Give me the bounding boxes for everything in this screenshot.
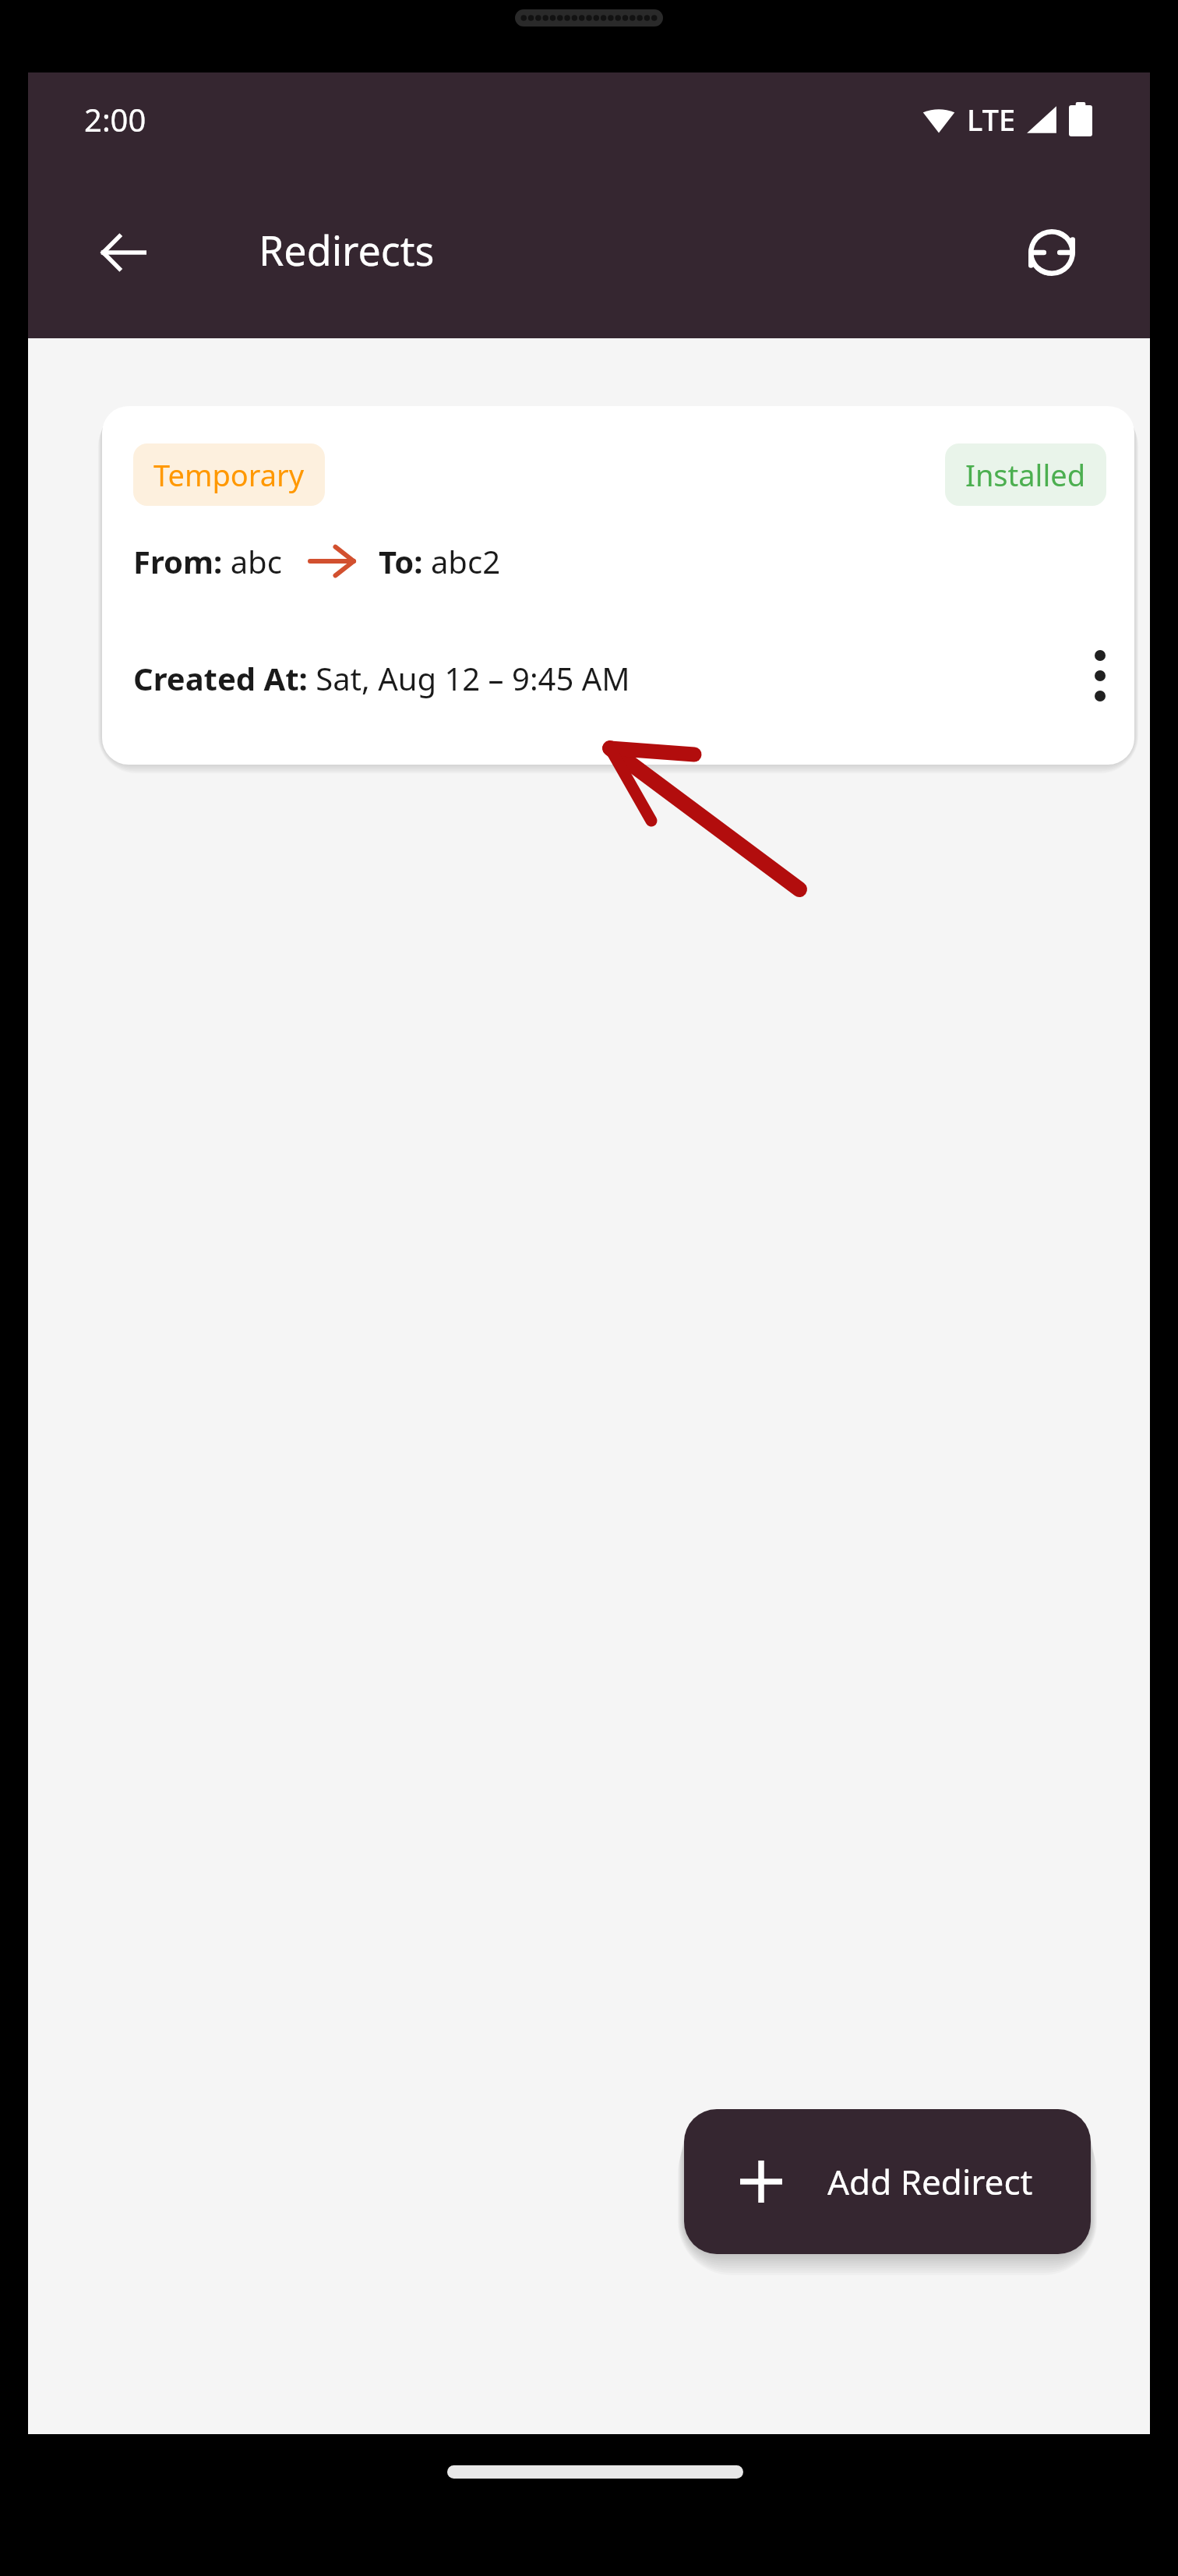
staticText: 2:00 xyxy=(84,98,146,140)
button[interactable]: Installed xyxy=(945,443,1106,506)
button[interactable]: Refresh xyxy=(1013,214,1091,292)
staticText: From: abc xyxy=(133,540,282,582)
staticText: Created At: Sat, Aug 12 – 9:45 AM xyxy=(133,657,630,699)
button[interactable]: Add Redirect xyxy=(684,2109,1091,2254)
staticText: Redirects xyxy=(259,222,435,277)
button[interactable]: Temporary xyxy=(133,443,325,506)
button[interactable]: More options xyxy=(1064,640,1134,712)
button[interactable]: Temporary xyxy=(102,406,1134,765)
staticText: To: abc2 xyxy=(379,540,501,582)
staticText: Installed xyxy=(965,454,1086,495)
staticText: LTE xyxy=(967,99,1016,140)
staticText: Add Redirect xyxy=(827,2158,1033,2205)
staticText: Temporary xyxy=(153,454,305,495)
button[interactable]: Back xyxy=(86,215,160,290)
